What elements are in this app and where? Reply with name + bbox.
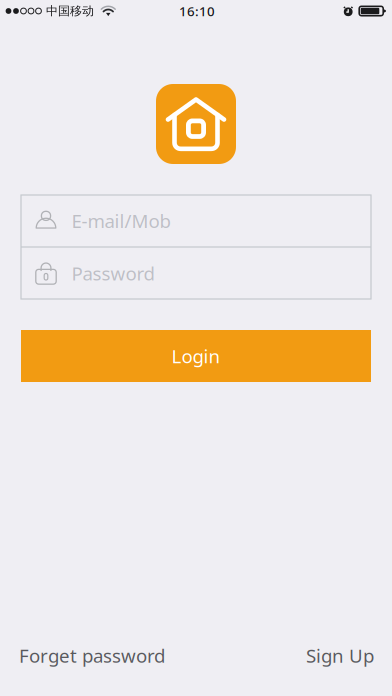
button[interactable]: E-mail/Mob [21, 195, 371, 246]
staticText: 16:10 [179, 2, 215, 20]
button[interactable]: Password [21, 248, 371, 299]
staticText: Forget password [19, 643, 165, 668]
staticText: 中国移动 [46, 4, 94, 18]
staticText: Login [171, 344, 220, 368]
button[interactable]: Forget password [19, 633, 165, 678]
staticText: Password [71, 261, 154, 286]
staticText: Sign Up [306, 643, 374, 668]
staticText: E-mail/Mob [71, 208, 170, 233]
button[interactable]: Sign Up [306, 633, 374, 678]
button[interactable]: Login [21, 330, 371, 382]
